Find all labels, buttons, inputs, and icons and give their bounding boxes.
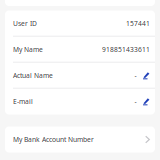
staticText: - — [134, 97, 136, 106]
button[interactable]: User ID — [5, 10, 155, 36]
button[interactable]: My Name — [5, 36, 155, 62]
button[interactable]: Actual Name — [5, 62, 155, 88]
button[interactable]: E-mail — [5, 88, 155, 114]
staticText: My Bank Account Number — [13, 135, 94, 144]
staticText: E-mail — [13, 97, 33, 106]
staticText: Actual Name — [13, 71, 53, 80]
staticText: 157441 — [126, 19, 150, 28]
staticText: My Name — [13, 45, 43, 54]
staticText: 918851433611 — [102, 45, 150, 54]
staticText: - — [134, 71, 136, 80]
button[interactable]: My Bank Account Number — [5, 126, 155, 152]
staticText: User ID — [13, 19, 37, 28]
